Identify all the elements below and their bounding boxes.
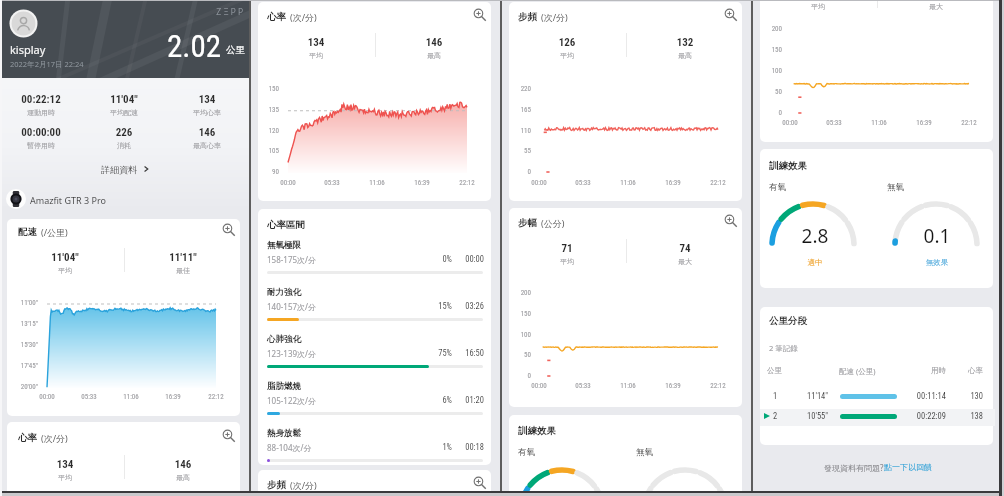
staticText: 88-104次/分 xyxy=(267,442,312,453)
staticText: 點一下以回饋 xyxy=(884,462,932,472)
staticText: 配速 (公里) xyxy=(839,366,876,376)
staticText: 最佳 xyxy=(138,266,228,275)
staticText: 05:33 xyxy=(312,179,352,187)
staticText: 140-157次/分 xyxy=(267,301,317,312)
staticText: 平均 xyxy=(522,257,612,266)
staticText: 00:11:14 xyxy=(896,391,946,401)
staticText: Amazfit GTR 3 Pro xyxy=(30,194,106,206)
staticText: 00:00 xyxy=(519,382,559,390)
staticText: 0% xyxy=(412,254,452,264)
staticText: 11'11" xyxy=(138,251,228,264)
staticText: 74 xyxy=(640,242,730,255)
staticText: 熱身放鬆 xyxy=(267,428,301,439)
staticText: (次/分) xyxy=(290,479,317,491)
staticText: 05:33 xyxy=(563,382,603,390)
staticText: 22:12 xyxy=(196,393,236,401)
staticText: 2 筆記錄 xyxy=(769,343,798,353)
staticText: 步幅 xyxy=(518,217,537,229)
staticText: 22:12 xyxy=(949,119,989,127)
staticText: kisplay xyxy=(10,42,46,57)
staticText: 公里 xyxy=(767,366,782,375)
staticText: 50 xyxy=(736,88,782,96)
staticText: 6% xyxy=(412,395,452,405)
staticText: 13'15" xyxy=(0,320,38,328)
staticText: 200 xyxy=(485,289,531,297)
staticText: 22:12 xyxy=(698,382,738,390)
staticText: 有氧 xyxy=(769,182,786,193)
staticText: 公里分段 xyxy=(769,315,807,327)
staticText: 有氧 xyxy=(518,447,535,458)
staticText: 11'14" xyxy=(807,391,828,401)
button[interactable] xyxy=(760,409,995,426)
staticText: 最高 xyxy=(138,473,228,482)
staticText: 平均心率 xyxy=(162,108,252,117)
staticText: 123-139次/分 xyxy=(267,348,317,359)
staticText: 2022年2月17日 22:24 xyxy=(10,59,84,69)
staticText: Ζ Ξ Ρ Ρ xyxy=(163,6,243,18)
staticText: 200 xyxy=(736,25,782,33)
staticText: 消耗 xyxy=(79,141,169,150)
staticText: 165 xyxy=(485,106,531,114)
staticText: 心率 xyxy=(267,11,286,23)
staticText: (次/分) xyxy=(290,11,317,23)
staticText: 105 xyxy=(233,147,279,155)
button[interactable]: 發現資料有問題? xyxy=(790,460,966,474)
staticText: 126 xyxy=(522,36,612,49)
staticText: 心率 xyxy=(943,366,983,375)
staticText: 11:06 xyxy=(608,382,648,390)
staticText: 11'00" xyxy=(0,299,38,307)
staticText: 適中 xyxy=(770,258,860,267)
staticText: 0.1 xyxy=(892,223,982,249)
staticText: 耐力強化 xyxy=(267,287,301,298)
staticText: 158-175次/分 xyxy=(267,254,317,265)
staticText: 公里 xyxy=(205,44,245,56)
staticText: 55 xyxy=(485,147,531,155)
staticText: 00:00 xyxy=(770,119,810,127)
staticText: 心肺強化 xyxy=(267,334,301,345)
staticText: 130 xyxy=(953,391,983,401)
button[interactable]: Expand chart xyxy=(473,476,486,489)
staticText: 11'04" xyxy=(79,93,169,106)
button[interactable]: Profile avatar xyxy=(9,9,38,38)
staticText: 0 xyxy=(736,109,782,117)
button[interactable]: Expand chart xyxy=(724,214,737,227)
staticText: 16:50 xyxy=(444,348,484,358)
staticText: 平均 xyxy=(773,2,863,11)
staticText: 無氧 xyxy=(887,182,904,193)
staticText: 最高心率 xyxy=(162,141,252,150)
staticText: 132 xyxy=(640,36,730,49)
staticText: 05:33 xyxy=(814,119,854,127)
staticText: 10'55" xyxy=(807,411,828,421)
staticText: (次/分) xyxy=(41,432,68,444)
staticText: (/公里) xyxy=(41,226,68,238)
button[interactable]: 詳細資料 xyxy=(80,161,170,177)
staticText: 134 xyxy=(20,458,110,471)
staticText: 平均 xyxy=(522,51,612,60)
staticText: 2 xyxy=(765,411,785,421)
staticText: 100 xyxy=(485,331,531,339)
staticText: 00:00 xyxy=(27,393,67,401)
staticText: 用時 xyxy=(906,366,946,375)
staticText: 平均配速 xyxy=(79,108,169,117)
button[interactable]: Expand chart xyxy=(222,223,235,236)
button[interactable]: Expand chart xyxy=(724,8,737,21)
staticText: 05:33 xyxy=(563,179,603,187)
staticText: 00:00 xyxy=(444,254,484,264)
staticText: 11:06 xyxy=(111,393,151,401)
staticText: 無效果 xyxy=(892,258,982,267)
staticText: 16:39 xyxy=(653,382,693,390)
staticText: 75% xyxy=(412,348,452,358)
staticText: 22:12 xyxy=(447,179,487,187)
staticText: 15'30" xyxy=(0,341,38,349)
staticText: 150 xyxy=(485,310,531,318)
staticText: 步頻 xyxy=(518,11,537,23)
button[interactable] xyxy=(760,389,995,406)
staticText: 00:18 xyxy=(444,442,484,452)
staticText: 146 xyxy=(389,36,479,49)
staticText: 03:26 xyxy=(444,301,484,311)
button[interactable]: Expand chart xyxy=(473,8,486,21)
staticText: 90 xyxy=(233,168,279,176)
staticText: 暫停用時 xyxy=(0,141,86,150)
staticText: 135 xyxy=(233,106,279,114)
button[interactable]: Expand chart xyxy=(222,429,235,442)
